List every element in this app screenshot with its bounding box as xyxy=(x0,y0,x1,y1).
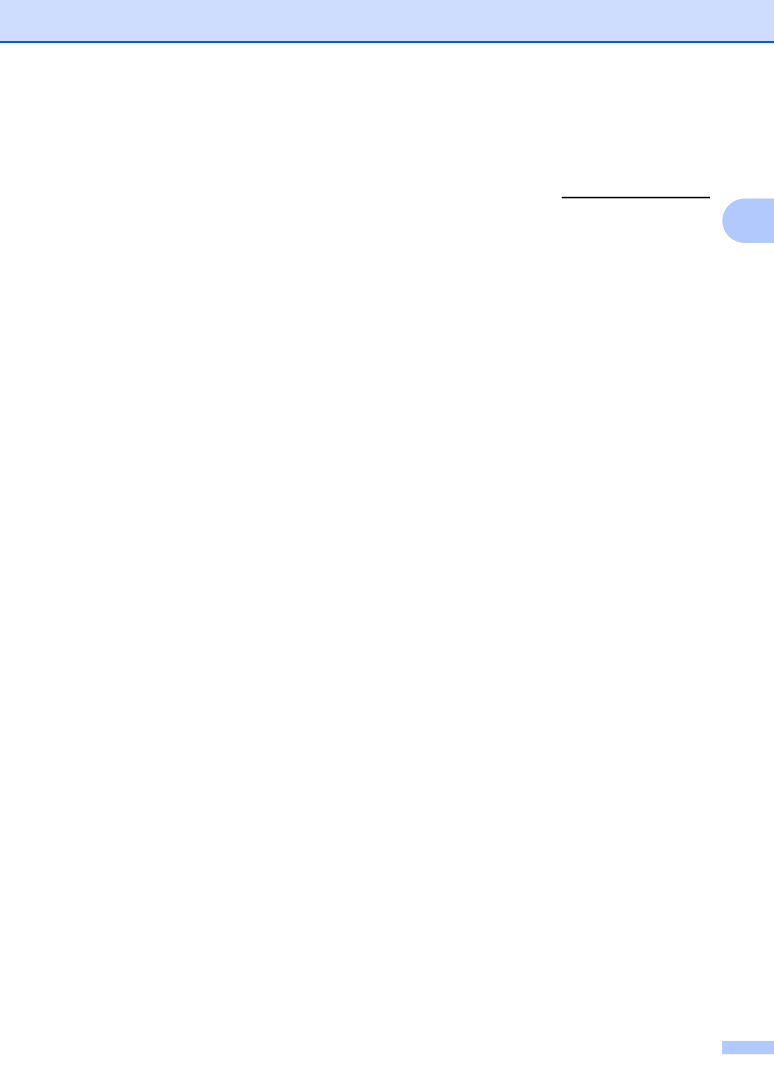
button[interactable]: Chapter tab xyxy=(720,196,774,245)
button[interactable]: Page marker xyxy=(722,1040,774,1056)
